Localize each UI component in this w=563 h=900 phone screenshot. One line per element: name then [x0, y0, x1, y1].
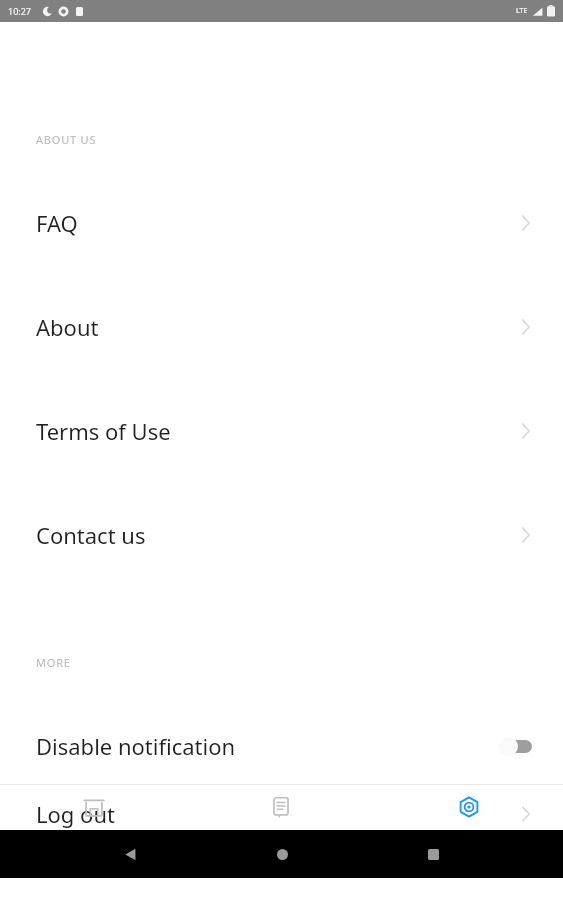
- staticText: LTE: [516, 6, 528, 16]
- button[interactable]: Recent apps: [413, 834, 453, 874]
- button[interactable]: Contact us: [0, 483, 563, 587]
- staticText: FAQ: [36, 208, 78, 238]
- button[interactable]: Orders: [187, 785, 375, 829]
- button[interactable]: Log out: [0, 798, 563, 830]
- button[interactable]: FAQ: [0, 171, 563, 275]
- staticText: Contact us: [36, 520, 146, 550]
- staticText: MORE: [36, 655, 71, 670]
- staticText: Log out: [36, 799, 115, 829]
- button[interactable]: Home: [262, 834, 302, 874]
- staticText: Disable notification: [36, 731, 236, 761]
- staticText: Terms of Use: [36, 416, 171, 446]
- staticText: 10:27: [8, 5, 32, 17]
- button[interactable]: Terms of Use: [0, 379, 563, 483]
- button[interactable]: Disable notification: [0, 694, 563, 798]
- button[interactable]: Settings: [375, 785, 563, 829]
- button[interactable]: About: [0, 275, 563, 379]
- staticText: ABOUT US: [36, 132, 97, 147]
- staticText: About: [36, 312, 99, 342]
- button[interactable]: Back: [110, 834, 150, 874]
- button[interactable]: Store: [0, 785, 187, 829]
